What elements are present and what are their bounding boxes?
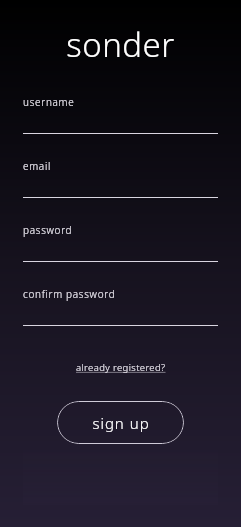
- staticText: username: [23, 95, 75, 109]
- staticText: password: [23, 223, 73, 237]
- button[interactable]: email: [23, 159, 218, 198]
- staticText: confirm password: [23, 287, 116, 301]
- staticText: sonder: [66, 22, 175, 67]
- button[interactable]: password: [23, 223, 218, 262]
- button[interactable]: confirm password: [23, 287, 218, 326]
- staticText: email: [23, 159, 51, 173]
- staticText: sign up: [92, 413, 150, 433]
- button[interactable]: already registered?: [72, 358, 170, 377]
- staticText: already registered?: [76, 361, 166, 374]
- button[interactable]: Sign up: [57, 401, 184, 444]
- button[interactable]: username: [23, 95, 218, 134]
